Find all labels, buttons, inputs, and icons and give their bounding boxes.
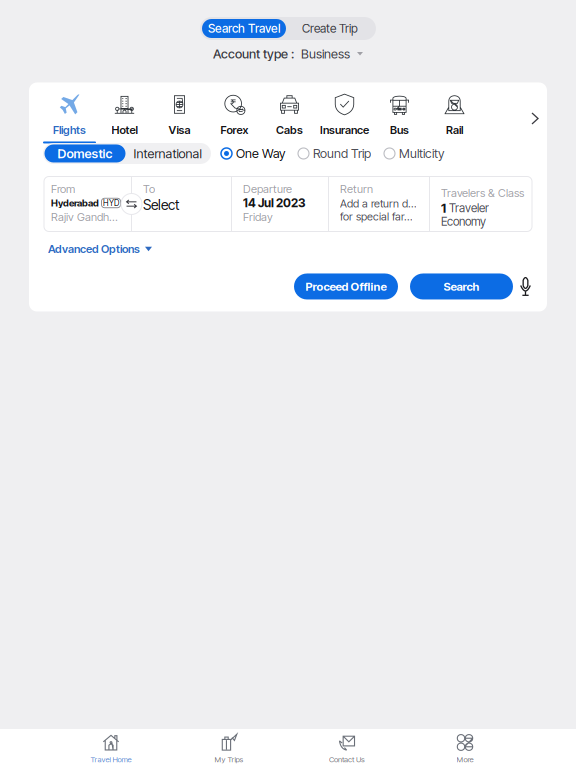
staticText: My Trips — [214, 755, 243, 764]
staticText: Travelers & Class — [441, 186, 524, 200]
staticText: Add a return d… — [340, 197, 416, 210]
staticText: Search — [443, 280, 479, 293]
button[interactable]: Rail — [427, 93, 482, 143]
button[interactable]: Proceed Offline — [294, 273, 398, 299]
staticText: 14 Jul 2023 — [243, 196, 306, 210]
button[interactable]: Visa — [152, 93, 207, 143]
staticText: Hotel — [111, 123, 137, 137]
button[interactable]: Voice search — [513, 276, 538, 296]
button[interactable]: More products — [523, 93, 547, 143]
staticText: International — [133, 146, 201, 161]
button[interactable]: Forex — [207, 93, 262, 143]
button[interactable]: Multicity — [384, 143, 444, 163]
button[interactable]: Business — [301, 47, 363, 61]
staticText: Flights — [53, 123, 86, 137]
staticText: HYD — [103, 198, 119, 208]
button[interactable]: Cabs — [262, 93, 317, 143]
staticText: Advanced Options — [48, 242, 140, 256]
staticText: Visa — [168, 123, 190, 137]
staticText: Friday — [243, 210, 273, 224]
staticText: Cabs — [276, 123, 303, 137]
button[interactable]: More — [406, 729, 524, 768]
staticText: Multicity — [399, 146, 444, 161]
staticText: Return — [340, 182, 373, 196]
button[interactable]: To — [132, 176, 231, 231]
button[interactable]: International — [125, 144, 209, 162]
staticText: To — [143, 182, 155, 196]
button[interactable]: Domestic — [44, 144, 125, 162]
button[interactable]: Create Trip — [286, 19, 374, 38]
button[interactable]: Travel Home — [52, 729, 170, 768]
staticText: Proceed Offline — [305, 280, 386, 293]
staticText: Domestic — [57, 146, 112, 161]
button[interactable]: Flights — [42, 93, 97, 143]
staticText: 1 — [441, 200, 446, 216]
button[interactable]: One Way — [221, 143, 285, 163]
staticText: Travel Home — [90, 755, 131, 764]
button[interactable]: Travelers & Class — [430, 176, 532, 231]
staticText: Create Trip — [302, 21, 358, 36]
button[interactable]: Return — [329, 176, 429, 231]
staticText: From — [51, 182, 75, 196]
staticText: More — [456, 755, 473, 764]
staticText: Hyderabad — [51, 197, 99, 209]
staticText: Account type : — [213, 46, 294, 61]
button[interactable]: My Trips — [170, 729, 288, 768]
staticText: Insurance — [320, 123, 369, 137]
staticText: Search Travel — [208, 21, 280, 36]
button[interactable]: Departure — [232, 176, 328, 231]
staticText: Round Trip — [313, 146, 371, 161]
button[interactable]: Hotel — [97, 93, 152, 143]
staticText: Economy — [441, 214, 486, 229]
button[interactable]: Search — [410, 273, 513, 299]
button[interactable]: Advanced Options — [29, 231, 152, 262]
button[interactable]: Contact Us — [288, 729, 406, 768]
staticText: Business — [301, 46, 350, 61]
staticText: Rail — [446, 123, 463, 137]
button[interactable]: Search Travel — [202, 19, 286, 38]
button[interactable]: Bus — [372, 93, 427, 143]
button[interactable]: From — [44, 176, 131, 231]
staticText: Bus — [390, 123, 409, 137]
button[interactable]: Round Trip — [298, 143, 371, 163]
staticText: Traveler — [449, 201, 489, 215]
staticText: Contact Us — [329, 755, 365, 764]
staticText: One Way — [236, 146, 285, 161]
staticText: Forex — [220, 123, 248, 137]
staticText: Rajiv Gandh… — [51, 210, 118, 224]
staticText: for special far… — [340, 210, 412, 223]
staticText: Select — [143, 196, 179, 213]
staticText: Departure — [243, 182, 292, 196]
button[interactable]: Insurance — [317, 93, 372, 143]
